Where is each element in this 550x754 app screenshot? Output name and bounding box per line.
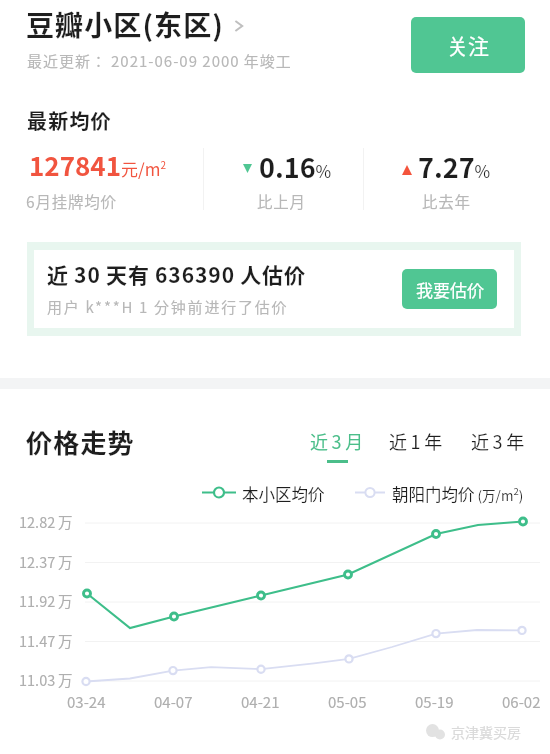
staticText: 12.82 万 (19, 511, 73, 532)
staticText: 最新均价 (27, 106, 112, 135)
staticText: 127841元/m2 (29, 146, 166, 184)
staticText: 04-07 (154, 691, 193, 713)
button[interactable]: 近 30 天有 636390 人估价 (27, 242, 521, 336)
staticText: 豆瓣小区(东区) (26, 4, 224, 45)
button[interactable]: 近 3 月 (310, 428, 364, 463)
staticText: 7.27% (418, 147, 491, 186)
staticText: 11.92 万 (19, 590, 73, 611)
button[interactable]: 查看小区详情 (229, 14, 249, 38)
button[interactable]: 关注 (411, 17, 525, 73)
staticText: 朝阳门均价 (万/m2) (392, 482, 524, 506)
staticText: 06-02 (502, 691, 541, 713)
staticText: 0.16% (259, 147, 332, 186)
staticText: 11.47 万 (19, 630, 73, 651)
staticText: 近 30 天有 636390 人估价 (47, 259, 307, 289)
button[interactable]: 我要估价 (402, 269, 497, 309)
staticText: 6月挂牌均价 (26, 190, 117, 212)
staticText: 京津冀买房 (451, 722, 521, 742)
staticText: 关注 (447, 30, 489, 60)
staticText: 05-05 (328, 691, 367, 713)
staticText: 比上月 (257, 190, 306, 212)
staticText: 05-19 (415, 691, 454, 713)
staticText: 最近更新： 2021-06-09 2000 年竣工 (27, 50, 292, 72)
staticText: 比去年 (422, 190, 471, 212)
staticText: 11.03 万 (19, 669, 73, 690)
staticText: 用户 k***H 1 分钟前进行了估价 (47, 296, 289, 318)
staticText: 我要估价 (416, 277, 484, 302)
button[interactable]: 近 1 年 (389, 428, 443, 454)
staticText: 价格走势 (26, 423, 135, 461)
button[interactable]: 近 3 年 (471, 428, 525, 454)
staticText: 本小区均价 (242, 482, 325, 506)
staticText: 近 3 月 (310, 428, 364, 454)
staticText: 03-24 (67, 691, 106, 713)
staticText: 04-21 (241, 691, 280, 713)
staticText: 12.37 万 (19, 551, 73, 572)
